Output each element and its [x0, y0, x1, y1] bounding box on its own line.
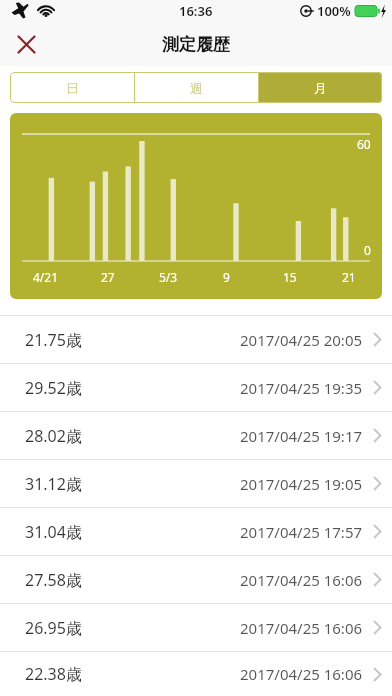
staticText: 日 — [66, 80, 79, 96]
staticText: 21.75歳 — [25, 329, 82, 351]
button[interactable]: 21.75歳 — [0, 316, 392, 363]
staticText: 月 — [314, 80, 327, 96]
staticText: 0 — [364, 242, 371, 258]
staticText: 2017/04/25 20:05 — [240, 330, 363, 350]
staticText: 9 — [223, 269, 230, 285]
staticText: 16:36 — [179, 2, 213, 20]
staticText: 60 — [357, 136, 371, 152]
button[interactable]: 27.58歳 — [0, 556, 392, 603]
button[interactable]: 31.12歳 — [0, 460, 392, 507]
staticText: 2017/04/25 19:05 — [240, 474, 363, 494]
staticText: 5/3 — [159, 269, 178, 285]
button[interactable]: 29.52歳 — [0, 364, 392, 411]
button[interactable]: 31.04歳 — [0, 508, 392, 555]
staticText: 4/21 — [33, 269, 59, 285]
button[interactable]: 日 — [10, 72, 134, 103]
staticText: 31.04歳 — [25, 521, 82, 543]
staticText: 2017/04/25 17:57 — [240, 522, 363, 542]
staticText: 28.02歳 — [25, 425, 82, 447]
staticText: 2017/04/25 19:35 — [240, 378, 363, 398]
button[interactable]: 月 — [259, 72, 382, 103]
button[interactable]: 22.38歳 — [0, 652, 392, 696]
staticText: 2017/04/25 16:06 — [240, 570, 363, 590]
staticText: 100% — [317, 2, 351, 20]
staticText: 22.38歳 — [25, 663, 82, 685]
staticText: 27 — [101, 269, 115, 285]
staticText: 29.52歳 — [25, 377, 82, 399]
staticText: 2017/04/25 16:06 — [240, 618, 363, 638]
button[interactable]: 週 — [135, 72, 258, 103]
staticText: 31.12歳 — [25, 473, 82, 495]
staticText: 週 — [190, 80, 203, 96]
staticText: 2017/04/25 19:17 — [240, 426, 363, 446]
staticText: 21 — [342, 269, 356, 285]
staticText: 2017/04/25 16:06 — [240, 664, 363, 684]
button[interactable]: 26.95歳 — [0, 604, 392, 651]
staticText: 27.58歳 — [25, 569, 82, 591]
button[interactable]: Close — [0, 22, 52, 66]
staticText: 測定履歴 — [162, 34, 230, 55]
button[interactable]: 28.02歳 — [0, 412, 392, 459]
staticText: 26.95歳 — [25, 617, 82, 639]
staticText: 15 — [283, 269, 297, 285]
